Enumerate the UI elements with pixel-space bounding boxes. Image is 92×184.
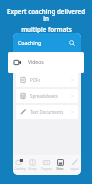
staticText: Coaching [18, 39, 42, 46]
button[interactable]: Logout [67, 155, 81, 175]
button[interactable]: Text Documents [16, 105, 78, 119]
staticText: Progress [41, 167, 52, 171]
staticText: Library [28, 167, 37, 171]
staticText: Videos [28, 59, 44, 66]
button[interactable]: Spreadsheets [16, 89, 78, 103]
button[interactable]: Progress [39, 155, 53, 175]
staticText: Text Documents [30, 109, 64, 115]
staticText: multiple formats [21, 25, 72, 33]
button[interactable]: Videos [8, 52, 84, 73]
staticText: Logout [70, 167, 79, 171]
staticText: Expert coaching delivered in [6, 7, 86, 23]
staticText: PDFs [30, 77, 41, 83]
button[interactable]: Coaching [13, 155, 26, 175]
button[interactable]: Search [67, 38, 76, 47]
staticText: Coaching [14, 167, 26, 171]
staticText: Notes [56, 167, 64, 171]
staticText: Spreadsheets [30, 93, 58, 99]
button[interactable]: Library [26, 155, 39, 175]
button[interactable]: Notes [53, 155, 67, 175]
button[interactable]: PDFs [16, 73, 78, 87]
